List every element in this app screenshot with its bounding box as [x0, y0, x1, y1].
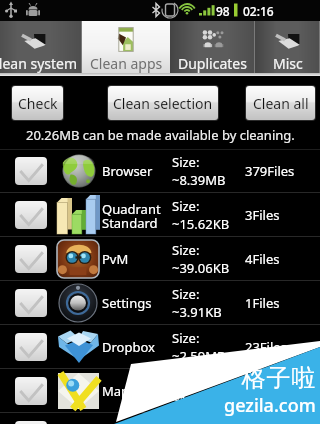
button[interactable]: Toggle selection — [0, 325, 320, 369]
button[interactable]: Toggle selection — [15, 333, 47, 361]
button[interactable]: Toggle selection — [15, 157, 47, 185]
staticText: Quadrant Standard — [102, 200, 161, 231]
button[interactable]: Clean selection — [108, 86, 218, 120]
staticText: Size: — [172, 197, 200, 215]
staticText: 20.26MB can be made available by cleanin… — [26, 126, 295, 144]
button[interactable]: Toggle selection — [15, 201, 47, 229]
button[interactable]: Toggle selection — [0, 369, 320, 413]
staticText: ~15.62KB — [172, 215, 230, 233]
staticText: Dropbox — [102, 338, 155, 356]
staticText: ~2.59MB — [172, 347, 226, 365]
staticText: ~39.06KB — [172, 259, 230, 277]
button[interactable]: Clean apps — [82, 21, 170, 76]
button[interactable]: Toggle selection — [0, 237, 320, 281]
staticText: Maps — [102, 382, 136, 400]
button[interactable]: Clean system — [0, 21, 82, 76]
button[interactable]: Check — [12, 86, 63, 120]
button[interactable]: Toggle selection — [0, 281, 320, 325]
button[interactable]: Toggle selection — [0, 193, 320, 237]
staticText: 379Files — [245, 162, 295, 180]
staticText: ~1.23MB — [172, 391, 226, 409]
staticText: 23Files — [245, 338, 287, 356]
staticText: Clean all — [253, 94, 309, 113]
button[interactable]: Toggle selection — [0, 149, 320, 193]
button[interactable]: Toggle selection — [15, 245, 47, 273]
staticText: 4Files — [245, 250, 280, 268]
staticText: gezila.com — [224, 393, 316, 418]
staticText: Size: — [172, 241, 200, 259]
staticText: 7Files — [245, 382, 280, 400]
button[interactable]: Clean all — [246, 86, 315, 120]
staticText: 1Files — [245, 294, 280, 312]
staticText: Duplicates — [178, 54, 247, 73]
staticText: Size: — [172, 285, 200, 303]
staticText: Clean apps — [90, 54, 163, 73]
staticText: 98 — [216, 3, 230, 19]
staticText: 格子啦 — [241, 363, 316, 393]
staticText: Browser — [102, 162, 153, 180]
button[interactable]: Toggle selection — [15, 377, 47, 405]
staticText: PvM — [102, 250, 129, 268]
staticText: Misc — [273, 54, 303, 73]
staticText: 3Files — [245, 206, 280, 224]
staticText: ~3.91KB — [172, 303, 222, 321]
staticText: Size: — [172, 153, 200, 171]
button[interactable]: Misc — [255, 21, 320, 76]
button[interactable]: Toggle selection — [15, 289, 47, 317]
staticText: Size: — [172, 329, 200, 347]
button[interactable]: Duplicates — [170, 21, 255, 76]
staticText: 02:16 — [243, 3, 274, 19]
staticText: ~8.39MB — [172, 171, 226, 189]
button[interactable]: Toggle selection — [15, 421, 47, 424]
staticText: Clean selection — [113, 94, 213, 113]
staticText: Settings — [102, 294, 152, 312]
staticText: Clean system — [0, 54, 78, 73]
staticText: Check — [18, 94, 58, 113]
button[interactable]: Toggle selection — [0, 413, 320, 424]
